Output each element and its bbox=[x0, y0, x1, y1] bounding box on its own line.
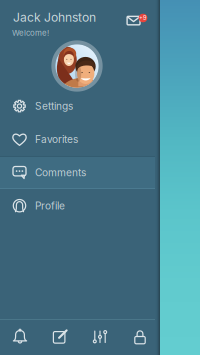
staticText: Favorites bbox=[35, 133, 78, 145]
button[interactable] bbox=[0, 319, 40, 355]
staticText: Comments bbox=[35, 166, 86, 179]
button[interactable]: Profile bbox=[0, 189, 160, 222]
button[interactable]: +9 bbox=[118, 8, 148, 34]
button[interactable] bbox=[40, 319, 80, 355]
staticText: Welcome! bbox=[12, 28, 49, 38]
button[interactable]: Comments bbox=[0, 156, 160, 189]
staticText: Settings bbox=[35, 100, 73, 112]
staticText: Jack Johnston bbox=[13, 10, 96, 25]
button[interactable] bbox=[80, 319, 120, 355]
button[interactable]: Favorites bbox=[0, 123, 160, 156]
button[interactable]: Settings bbox=[0, 89, 160, 123]
staticText: +9 bbox=[139, 14, 147, 21]
staticText: Profile bbox=[35, 200, 65, 212]
button[interactable] bbox=[120, 319, 160, 355]
